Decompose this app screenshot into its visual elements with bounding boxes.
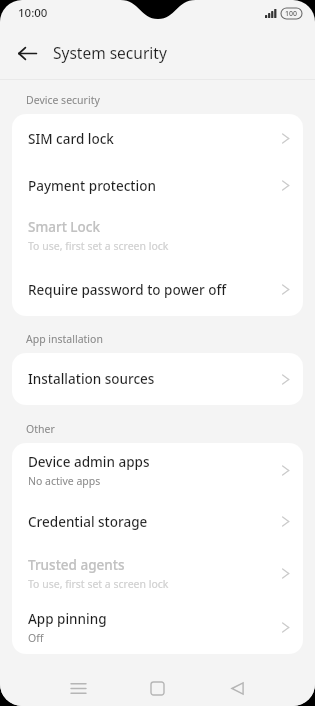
button[interactable]: Recent apps	[58, 671, 98, 706]
button[interactable]: Require password to power off	[12, 263, 303, 316]
staticText: Require password to power off	[28, 281, 227, 299]
button[interactable]: Back	[217, 671, 257, 706]
button[interactable]: Installation sources	[12, 353, 303, 405]
button[interactable]: Home	[137, 671, 177, 706]
button[interactable]: SIM card lock	[12, 114, 303, 163]
staticText: To use, first set a screen lock	[28, 239, 169, 253]
staticText: No active apps	[28, 474, 101, 488]
staticText: Smart Lock	[28, 218, 100, 236]
staticText: Credential storage	[28, 513, 148, 531]
staticText: Device admin apps	[28, 453, 150, 471]
button[interactable]: Device admin apps	[12, 443, 303, 497]
button[interactable]: Trusted agents	[12, 546, 303, 600]
staticText: Trusted agents	[28, 556, 125, 574]
button[interactable]: Payment protection	[12, 163, 303, 208]
staticText: To use, first set a screen lock	[28, 577, 169, 591]
staticText: Installation sources	[28, 370, 155, 388]
staticText: Payment protection	[28, 177, 156, 195]
staticText: Device security	[26, 93, 100, 107]
button[interactable]: App pinning	[12, 600, 303, 654]
button[interactable]: Credential storage	[12, 497, 303, 546]
staticText: Other	[26, 422, 55, 436]
staticText: 100	[285, 9, 298, 19]
staticText: App pinning	[28, 610, 107, 628]
staticText: SIM card lock	[28, 130, 114, 148]
staticText: App installation	[26, 332, 103, 346]
staticText: Off	[28, 631, 44, 645]
staticText: System security	[53, 42, 167, 63]
button[interactable]: Smart Lock	[12, 208, 303, 263]
button[interactable]: Back	[9, 35, 45, 71]
staticText: 10:00	[18, 5, 48, 21]
